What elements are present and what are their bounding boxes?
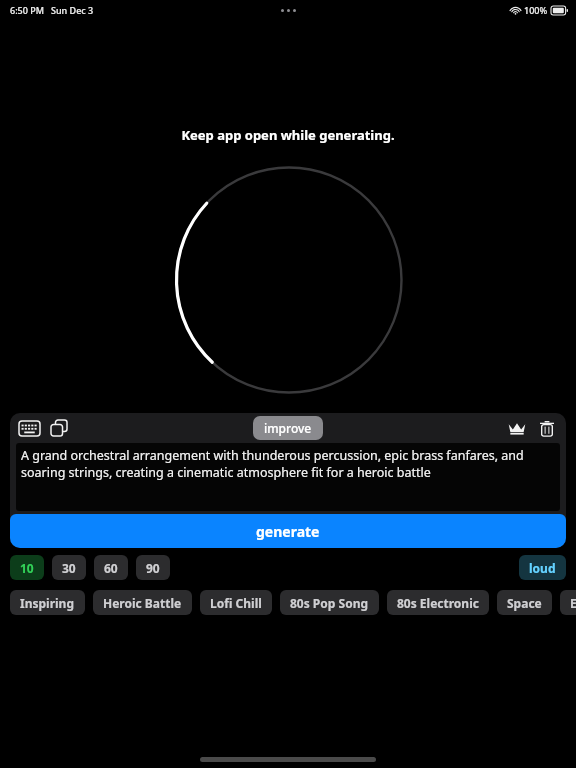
button[interactable]: loud [519, 555, 566, 580]
button[interactable]: A grand orchestral arrangement with thun… [16, 443, 560, 511]
button[interactable]: Keyboard [14, 413, 44, 443]
button[interactable]: 80s Electronic [387, 590, 489, 615]
button[interactable]: improve [253, 416, 323, 440]
staticText: Space [507, 595, 542, 611]
button[interactable]: Lofi Chill [200, 590, 272, 615]
staticText: Keep app open while generating. [0, 126, 576, 144]
staticText: 60 [104, 560, 118, 576]
staticText: 80s Pop Song [290, 595, 369, 611]
button[interactable]: Heroic Battle [93, 590, 192, 615]
button[interactable]: Inspiring [10, 590, 85, 615]
button[interactable]: Premium [502, 413, 532, 443]
button[interactable]: Space [497, 590, 552, 615]
button[interactable]: 10 [10, 555, 44, 580]
staticText: 6:50 PM [10, 4, 44, 16]
staticText: loud [529, 560, 556, 576]
staticText: Lofi Chill [210, 595, 262, 611]
staticText: 90 [146, 560, 160, 576]
staticText: Sun Dec 3 [51, 4, 94, 16]
staticText: 100% [524, 4, 548, 16]
staticText: improve [264, 420, 312, 436]
staticText: Inspiring [20, 595, 75, 611]
staticText: A grand orchestral arrangement with thun… [21, 447, 558, 481]
button[interactable]: 60 [94, 555, 128, 580]
button[interactable]: 80s Pop Song [280, 590, 379, 615]
button[interactable]: 90 [136, 555, 170, 580]
button[interactable]: Delete [532, 413, 562, 443]
staticText: 10 [20, 560, 34, 576]
button[interactable]: Epic [560, 590, 576, 615]
button[interactable]: Copy [44, 413, 74, 443]
button[interactable]: 30 [52, 555, 86, 580]
button[interactable]: generate [10, 514, 566, 548]
staticText: Epic [570, 595, 576, 611]
staticText: 80s Electronic [397, 595, 479, 611]
staticText: generate [256, 522, 320, 541]
staticText: Heroic Battle [103, 595, 182, 611]
staticText: 30 [62, 560, 76, 576]
